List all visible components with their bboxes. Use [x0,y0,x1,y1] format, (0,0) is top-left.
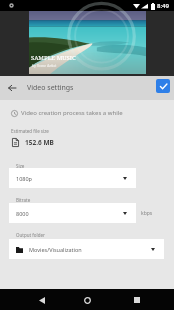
button[interactable]: Confirm [156,79,170,93]
button[interactable]: Back [4,80,20,96]
button[interactable]: Movies/Visualization [9,239,164,259]
staticText: Size [16,163,25,169]
staticText: 152.6 MB [25,138,54,147]
staticText: Video creation process takes a while [21,109,123,117]
staticText: Video settings [27,83,74,93]
staticText: SAMPLE MUSIC [31,54,76,62]
button[interactable]: Back [33,291,51,309]
staticText: Estimated file size [11,128,49,134]
staticText: by Some Artist [32,63,57,68]
staticText: 1080p [16,175,32,182]
staticText: kbps [141,210,153,217]
button[interactable]: Home [78,291,96,309]
button[interactable]: 1080p [9,168,136,188]
staticText: 8000 [16,210,29,217]
staticText: 8:49 [157,2,169,10]
staticText: Movies/Visualization [29,246,82,253]
staticText: Output folder [16,232,45,238]
button[interactable]: 8000 [9,203,136,223]
staticText: Bitrate [16,197,31,203]
button[interactable]: Recents [128,291,146,309]
